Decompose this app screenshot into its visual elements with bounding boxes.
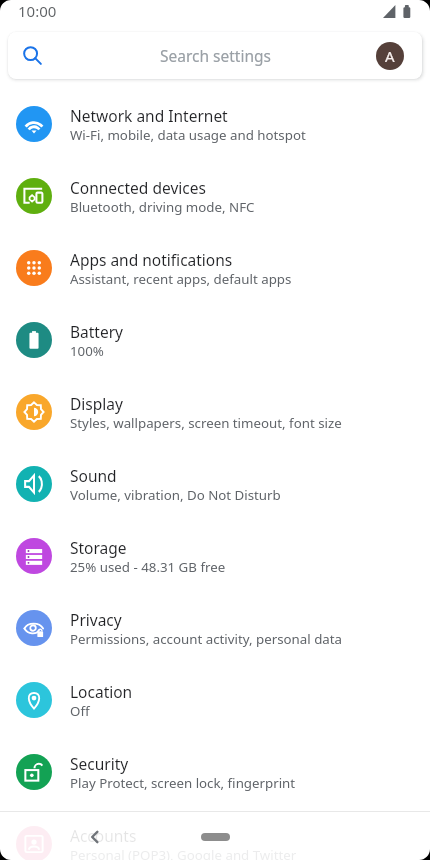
button[interactable]: Account [376,42,404,70]
staticText: Assistant, recent apps, default apps [70,270,292,288]
button[interactable]: Sound [0,448,430,520]
staticText: 100% [70,342,104,360]
staticText: A [385,46,395,66]
staticText: Display [70,393,123,414]
staticText: Permissions, account activity, personal … [70,630,343,648]
staticText: Battery [70,321,124,342]
staticText: Storage [70,537,127,558]
staticText: Sound [70,465,117,486]
button[interactable]: Connected devices [0,160,430,232]
button[interactable]: Battery [0,304,430,376]
button[interactable]: Location [0,664,430,736]
button[interactable]: Security [0,736,430,808]
staticText: Styles, wallpapers, screen timeout, font… [70,414,342,432]
button[interactable]: Network and Internet [0,88,430,160]
button[interactable]: Storage [0,520,430,592]
button[interactable]: Accounts [0,808,430,860]
button[interactable]: Display [0,376,430,448]
staticText: Accounts [70,825,137,846]
staticText: Security [70,753,129,774]
staticText: Volume, vibration, Do Not Disturb [70,486,281,504]
staticText: Personal (POP3), Google and Twitter [70,846,297,860]
button[interactable]: Home [201,833,230,841]
staticText: Privacy [70,609,122,630]
button[interactable]: Privacy [0,592,430,664]
staticText: Bluetooth, driving mode, NFC [70,198,255,216]
button[interactable]: Search settings [8,32,422,79]
staticText: Off [70,702,90,720]
staticText: Apps and notifications [70,249,233,270]
staticText: Connected devices [70,177,206,198]
button[interactable]: Back [83,825,107,849]
staticText: 10:00 [18,1,57,21]
button[interactable]: Apps and notifications [0,232,430,304]
staticText: Search settings [160,45,271,66]
staticText: Play Protect, screen lock, fingerprint [70,774,296,792]
staticText: Network and Internet [70,105,228,126]
staticText: Wi-Fi, mobile, data usage and hotspot [70,126,306,144]
staticText: Location [70,681,133,702]
staticText: 25% used - 48.31 GB free [70,558,226,576]
